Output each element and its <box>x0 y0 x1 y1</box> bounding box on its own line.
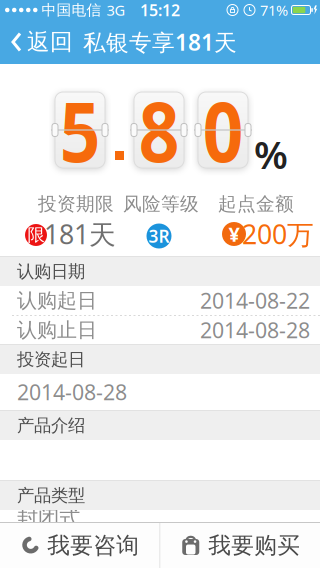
staticText: 200万 <box>242 216 314 252</box>
staticText: 封闭式 <box>17 505 80 531</box>
staticText: 产品类型 <box>17 485 85 506</box>
staticText: 2014-08-28 <box>17 378 127 406</box>
staticText: % <box>254 128 288 180</box>
staticText: 181天 <box>44 216 116 252</box>
staticText: 2014-08-28 <box>200 316 310 344</box>
staticText: 8 <box>135 75 182 185</box>
staticText: 投资起日 <box>17 349 85 370</box>
staticText: 0 <box>199 75 246 185</box>
staticText: 我要咨询 <box>47 532 139 559</box>
staticText: ¥ <box>228 221 239 247</box>
button[interactable]: 我要购买 <box>160 523 320 568</box>
button[interactable]: 我要咨询 <box>0 523 159 568</box>
staticText: 起点金额 <box>218 192 294 215</box>
staticText: 5 <box>56 75 103 185</box>
staticText: 3R <box>148 224 169 247</box>
staticText: 返回 <box>27 28 73 56</box>
staticText: 私银专享181天 <box>83 27 237 57</box>
button[interactable]: 返回 <box>0 18 73 66</box>
staticText: 我要购买 <box>208 532 300 559</box>
staticText: 认购止日 <box>17 318 97 342</box>
staticText: 认购日期 <box>17 261 85 282</box>
staticText: 中国电信 <box>41 1 101 19</box>
staticText: 认购起日 <box>17 288 97 313</box>
staticText: 3G <box>106 0 125 20</box>
staticText: 产品介绍 <box>17 415 85 436</box>
staticText: 风险等级 <box>123 192 199 215</box>
staticText: 71% <box>260 0 288 20</box>
staticText: 投资期限 <box>38 192 114 215</box>
staticText: 限 <box>27 224 44 246</box>
staticText: 15:12 <box>140 0 180 21</box>
staticText: 2014-08-22 <box>200 286 310 315</box>
